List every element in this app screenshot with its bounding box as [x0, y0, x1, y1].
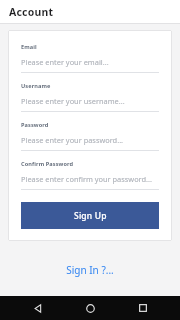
button[interactable]: Sign Up [21, 202, 159, 229]
staticText: Confirm Password [21, 160, 74, 168]
button[interactable]: Recent apps [128, 296, 158, 320]
button[interactable]: Sign In ?... [56, 260, 124, 280]
button[interactable]: Please enter confirm your password... [21, 174, 153, 184]
staticText: Username [21, 82, 51, 90]
staticText: Sign In ?... [66, 263, 114, 277]
button[interactable]: Please enter your password... [21, 135, 124, 145]
button[interactable]: Please enter your email... [21, 57, 109, 67]
staticText: Sign Up [74, 210, 107, 222]
button[interactable]: Home [75, 296, 105, 320]
staticText: Account [9, 5, 54, 19]
staticText: Password [21, 121, 49, 129]
button[interactable]: Back [23, 296, 53, 320]
button[interactable]: Please enter your username... [21, 96, 125, 106]
staticText: Email [21, 43, 37, 51]
